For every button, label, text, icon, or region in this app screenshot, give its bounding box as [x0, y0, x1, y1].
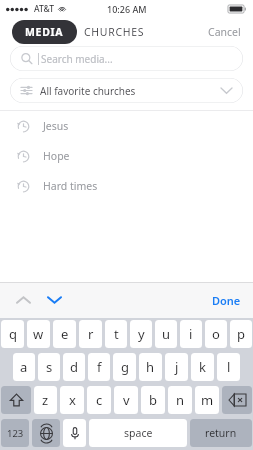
button[interactable]: v — [114, 386, 138, 414]
button[interactable]: j — [165, 353, 188, 381]
staticText: Jesus — [43, 119, 69, 133]
staticText: Search media... — [41, 52, 113, 66]
staticText: e — [61, 325, 69, 343]
button[interactable]: h — [139, 353, 162, 381]
button[interactable]: Hope — [0, 141, 253, 171]
button[interactable]: space — [89, 419, 187, 447]
button[interactable]: CHURCHES — [80, 20, 149, 44]
staticText: z — [42, 391, 49, 409]
button[interactable]: Shift — [1, 386, 31, 414]
staticText: q — [9, 325, 17, 343]
staticText: v — [123, 391, 130, 409]
button[interactable]: MEDIA — [12, 20, 77, 44]
staticText: k — [199, 358, 206, 376]
button[interactable]: u — [155, 320, 177, 348]
staticText: All favorite churches — [40, 84, 136, 98]
button[interactable]: Done — [208, 289, 245, 312]
staticText: u — [162, 325, 171, 343]
staticText: n — [176, 391, 185, 409]
staticText: Hope — [43, 149, 70, 163]
button[interactable]: o — [205, 320, 227, 348]
button[interactable]: n — [168, 386, 192, 414]
staticText: 10:26 AM — [107, 3, 147, 15]
staticText: i — [189, 325, 193, 343]
button[interactable]: Search media... — [10, 46, 243, 71]
button[interactable]: c — [87, 386, 111, 414]
button[interactable]: g — [113, 353, 136, 381]
staticText: return — [205, 426, 237, 440]
staticText: CHURCHES — [84, 25, 145, 39]
button[interactable]: z — [34, 386, 57, 414]
staticText: space — [124, 426, 153, 440]
button[interactable]: Jesus — [0, 111, 253, 141]
button[interactable]: e — [53, 320, 76, 348]
button[interactable]: Delete — [222, 386, 252, 414]
button[interactable]: Previous field — [10, 288, 36, 312]
button[interactable]: All favorite churches — [10, 78, 243, 103]
button[interactable]: q — [1, 320, 24, 348]
button[interactable]: i — [180, 320, 202, 348]
button[interactable]: s — [38, 353, 60, 381]
button[interactable]: x — [60, 386, 84, 414]
button[interactable]: m — [195, 386, 219, 414]
staticText: g — [121, 358, 129, 376]
staticText: Done — [212, 293, 241, 308]
button[interactable]: Change keyboard — [32, 419, 60, 447]
button[interactable]: a — [13, 353, 35, 381]
button[interactable]: w — [27, 320, 50, 348]
staticText: c — [96, 391, 103, 409]
staticText: 123 — [7, 427, 24, 440]
button[interactable]: Hard times — [0, 171, 253, 201]
button[interactable]: r — [79, 320, 102, 348]
button[interactable]: k — [191, 353, 214, 381]
staticText: o — [212, 325, 220, 343]
staticText: d — [70, 358, 78, 376]
button[interactable]: f — [88, 353, 110, 381]
button[interactable]: 123 — [1, 419, 29, 447]
button[interactable]: t — [105, 320, 127, 348]
staticText: MEDIA — [25, 25, 64, 39]
button[interactable]: Dictate — [63, 419, 86, 447]
staticText: b — [149, 391, 157, 409]
staticText: r — [88, 325, 94, 343]
staticText: x — [69, 391, 76, 409]
staticText: AT&T — [34, 3, 55, 15]
staticText: l — [227, 358, 231, 376]
staticText: f — [97, 358, 102, 376]
button[interactable]: y — [130, 320, 152, 348]
staticText: p — [237, 325, 245, 343]
staticText: a — [20, 358, 28, 376]
button[interactable]: b — [141, 386, 165, 414]
staticText: s — [46, 358, 53, 376]
button[interactable]: Cancel — [204, 20, 245, 44]
button[interactable]: p — [230, 320, 252, 348]
staticText: h — [146, 358, 155, 376]
button[interactable]: l — [217, 353, 240, 381]
staticText: Hard times — [43, 179, 98, 193]
staticText: j — [175, 358, 179, 376]
staticText: y — [138, 325, 145, 343]
button[interactable]: return — [190, 419, 252, 447]
button[interactable]: d — [63, 353, 85, 381]
staticText: w — [33, 325, 44, 343]
button[interactable]: Next field — [41, 288, 67, 312]
staticText: Cancel — [208, 25, 241, 39]
staticText: m — [201, 391, 214, 409]
staticText: t — [114, 325, 119, 343]
